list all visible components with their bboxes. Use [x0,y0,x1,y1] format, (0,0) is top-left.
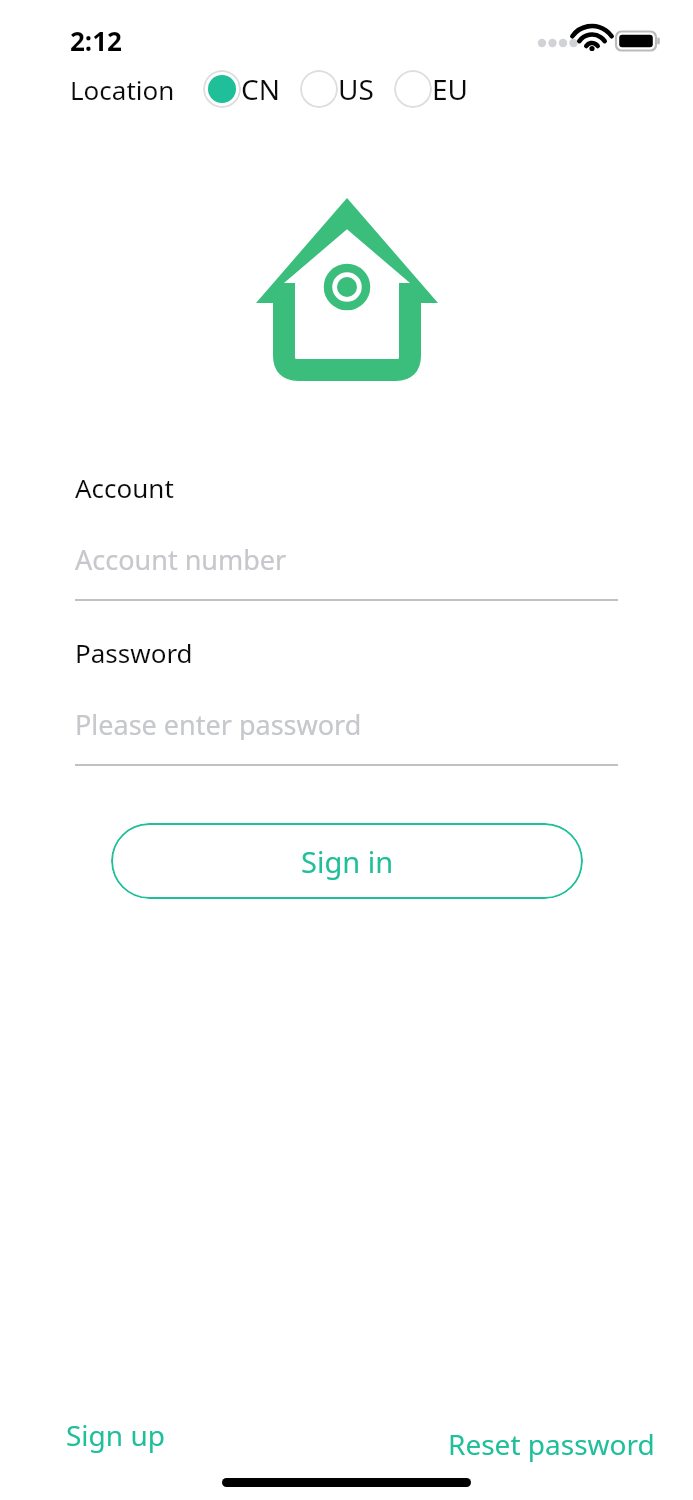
staticText: Location [70,72,175,107]
staticText: Reset password [448,1425,655,1463]
button[interactable]: US [300,70,374,108]
staticText: Password [75,635,193,670]
button[interactable]: Reset password [448,1425,655,1463]
staticText: Sign up [66,1416,165,1454]
staticText: Account number [75,541,287,575]
staticText: EU [432,70,469,108]
staticText: Account [75,470,174,505]
button[interactable]: CN [203,70,280,108]
staticText: CN [241,70,280,108]
staticText: US [338,70,374,108]
button[interactable]: Please enter password [75,706,618,740]
button[interactable]: Account number [75,541,618,575]
staticText: Please enter password [75,706,362,740]
staticText: Sign in [301,842,394,881]
button[interactable]: Sign up [66,1416,165,1454]
button[interactable]: Sign in [111,823,583,899]
button[interactable]: EU [394,70,469,108]
staticText: 2:12 [70,23,122,58]
